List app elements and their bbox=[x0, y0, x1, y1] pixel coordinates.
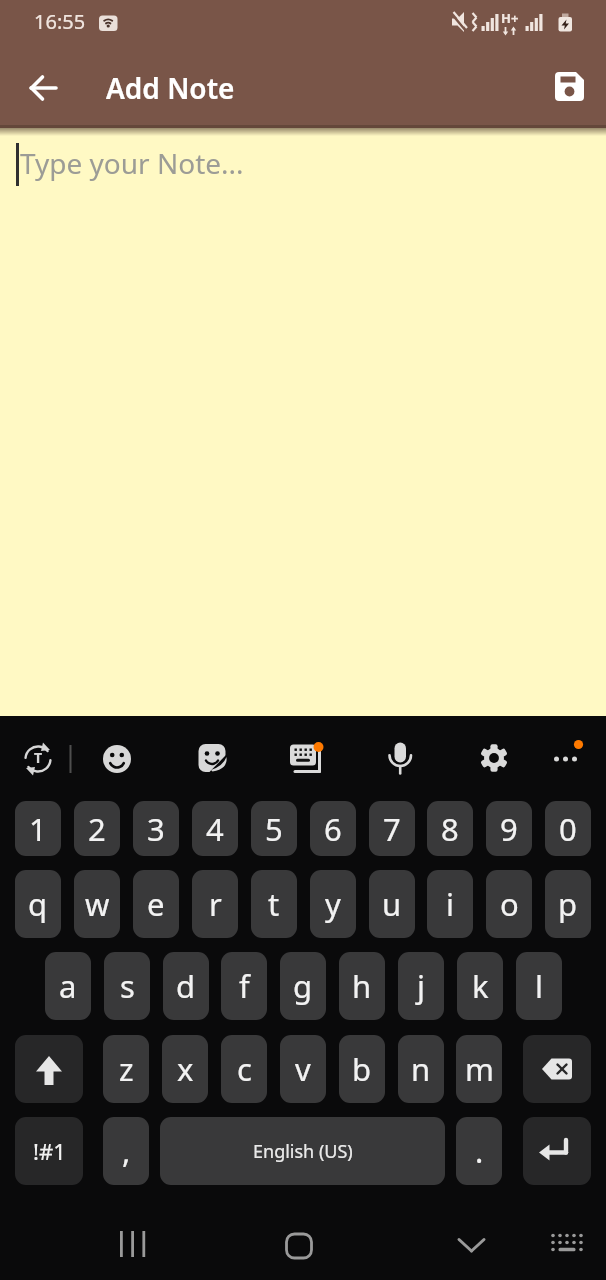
button[interactable]: !#1 bbox=[15, 1117, 83, 1185]
staticText: f bbox=[239, 965, 250, 1007]
staticText: 5 bbox=[265, 808, 283, 850]
button[interactable]: 5 bbox=[251, 801, 297, 856]
staticText: r bbox=[209, 883, 222, 925]
button[interactable]: 9 bbox=[486, 801, 532, 856]
button[interactable] bbox=[93, 734, 141, 782]
staticText: h bbox=[352, 965, 372, 1007]
button[interactable]: c bbox=[221, 1035, 267, 1103]
button[interactable]: x bbox=[162, 1035, 208, 1103]
button[interactable] bbox=[274, 1221, 322, 1269]
button[interactable]: z bbox=[103, 1035, 149, 1103]
button[interactable] bbox=[188, 734, 236, 782]
button[interactable] bbox=[160, 1117, 445, 1185]
button[interactable]: s bbox=[104, 952, 150, 1020]
staticText: i bbox=[446, 883, 454, 925]
button[interactable] bbox=[15, 1035, 83, 1103]
button[interactable]: 0 bbox=[545, 801, 591, 856]
button[interactable] bbox=[14, 734, 62, 782]
button[interactable]: k bbox=[457, 952, 503, 1020]
staticText: g bbox=[293, 965, 313, 1007]
button[interactable]: 2 bbox=[74, 801, 120, 856]
button[interactable] bbox=[108, 1221, 156, 1269]
button[interactable]: 7 bbox=[369, 801, 415, 856]
staticText: k bbox=[472, 965, 489, 1007]
staticText: l bbox=[535, 965, 543, 1007]
staticText: d bbox=[176, 965, 196, 1007]
staticText: 3 bbox=[147, 808, 165, 850]
staticText: o bbox=[500, 883, 519, 925]
staticText: t bbox=[268, 883, 280, 925]
staticText: English (US) bbox=[253, 1139, 353, 1164]
button[interactable]: r bbox=[192, 870, 238, 938]
button[interactable]: 8 bbox=[427, 801, 473, 856]
staticText: c bbox=[237, 1048, 252, 1090]
staticText: j bbox=[417, 965, 425, 1007]
staticText: 1 bbox=[29, 808, 47, 850]
button[interactable]: 4 bbox=[192, 801, 238, 856]
button[interactable] bbox=[376, 734, 424, 782]
button[interactable]: d bbox=[163, 952, 209, 1020]
button[interactable]: e bbox=[133, 870, 179, 938]
staticText: q bbox=[28, 883, 48, 925]
button[interactable]: 3 bbox=[133, 801, 179, 856]
button[interactable]: i bbox=[427, 870, 473, 938]
button[interactable]: n bbox=[398, 1035, 444, 1103]
button[interactable] bbox=[523, 1035, 591, 1103]
button[interactable] bbox=[470, 734, 518, 782]
staticText: a bbox=[59, 965, 77, 1007]
button[interactable] bbox=[546, 64, 594, 112]
staticText: w bbox=[85, 883, 110, 925]
button[interactable] bbox=[20, 62, 68, 110]
button[interactable]: t bbox=[251, 870, 297, 938]
staticText: Add Note bbox=[106, 69, 235, 107]
staticText: z bbox=[119, 1048, 134, 1090]
button[interactable]: v bbox=[280, 1035, 326, 1103]
button[interactable]: b bbox=[339, 1035, 385, 1103]
staticText: b bbox=[352, 1048, 372, 1090]
staticText: , bbox=[122, 1130, 131, 1172]
staticText: T bbox=[34, 748, 43, 767]
staticText: m bbox=[465, 1048, 494, 1090]
staticText: v bbox=[295, 1048, 311, 1090]
button[interactable]: a bbox=[45, 952, 91, 1020]
button[interactable]: 6 bbox=[310, 801, 356, 856]
button[interactable] bbox=[542, 1221, 590, 1269]
button[interactable]: l bbox=[516, 952, 562, 1020]
staticText: p bbox=[558, 883, 578, 925]
button[interactable]: u bbox=[369, 870, 415, 938]
button[interactable] bbox=[279, 734, 327, 782]
button[interactable]: . bbox=[456, 1117, 502, 1185]
staticText: 2 bbox=[88, 808, 106, 850]
button[interactable]: g bbox=[280, 952, 326, 1020]
staticText: !#1 bbox=[33, 1136, 66, 1166]
button[interactable]: 1 bbox=[15, 801, 61, 856]
staticText: e bbox=[147, 883, 165, 925]
staticText: s bbox=[120, 965, 135, 1007]
button[interactable]: f bbox=[221, 952, 267, 1020]
button[interactable]: h bbox=[339, 952, 385, 1020]
button[interactable]: o bbox=[486, 870, 532, 938]
staticText: . bbox=[475, 1130, 484, 1172]
staticText: n bbox=[411, 1048, 431, 1090]
button[interactable]: p bbox=[545, 870, 591, 938]
button[interactable]: y bbox=[310, 870, 356, 938]
staticText: u bbox=[382, 883, 402, 925]
staticText: 8 bbox=[441, 808, 459, 850]
button[interactable]: q bbox=[15, 870, 61, 938]
button[interactable]: w bbox=[74, 870, 120, 938]
staticText: H+ bbox=[501, 9, 519, 27]
staticText: x bbox=[177, 1048, 194, 1090]
staticText: 16:55 bbox=[34, 8, 86, 35]
button[interactable]: j bbox=[398, 952, 444, 1020]
staticText: 9 bbox=[500, 808, 518, 850]
staticText: Type your Note... bbox=[20, 144, 244, 182]
button[interactable] bbox=[447, 1221, 495, 1269]
button[interactable] bbox=[541, 734, 589, 782]
button[interactable]: m bbox=[456, 1035, 502, 1103]
staticText: y bbox=[325, 883, 341, 925]
button[interactable] bbox=[523, 1117, 591, 1185]
staticText: 7 bbox=[383, 808, 401, 850]
staticText: 0 bbox=[559, 808, 577, 850]
staticText: 6 bbox=[324, 808, 342, 850]
button[interactable]: , bbox=[103, 1117, 149, 1185]
